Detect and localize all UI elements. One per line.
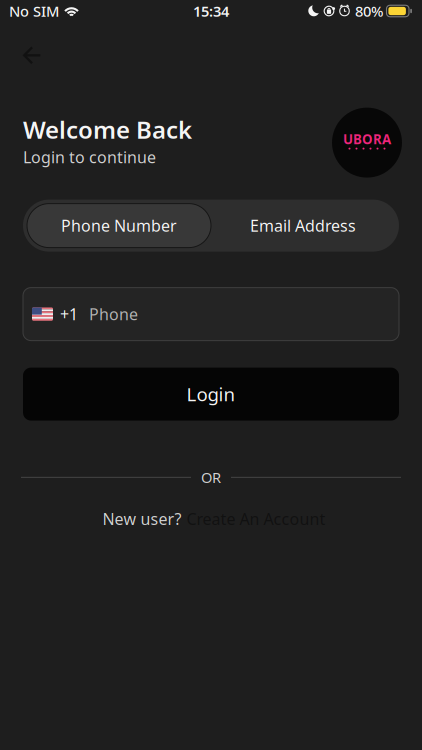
- staticText: +1: [60, 303, 78, 325]
- staticText: 80%: [355, 1, 383, 21]
- staticText: UBORA: [343, 130, 391, 148]
- staticText: Login: [186, 382, 235, 406]
- button[interactable]: Create An Account: [186, 508, 325, 529]
- staticText: New user?: [102, 508, 181, 529]
- button[interactable]: Phone Number: [27, 204, 211, 248]
- staticText: Welcome Back: [23, 114, 192, 145]
- staticText: Login to continue: [23, 146, 156, 168]
- staticText: Phone Number: [61, 215, 177, 236]
- staticText: Email Address: [250, 215, 356, 236]
- staticText: No SIM: [9, 1, 59, 21]
- staticText: Phone: [89, 303, 138, 325]
- staticText: OR: [201, 468, 221, 487]
- staticText: 15:34: [193, 1, 229, 21]
- staticText: Create An Account: [186, 508, 325, 529]
- button[interactable]: Email Address: [211, 204, 395, 248]
- button[interactable]: Login: [23, 368, 399, 421]
